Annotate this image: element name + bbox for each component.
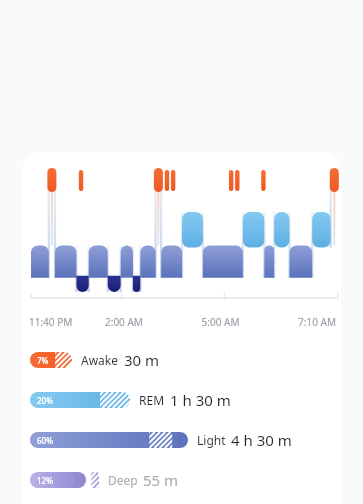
other: Sleep stage hypnogram <box>31 164 338 312</box>
staticText: REM <box>139 392 165 408</box>
staticText: 12% <box>37 475 53 486</box>
staticText: 2:00 AM <box>105 315 182 329</box>
staticText: Light <box>197 432 226 448</box>
button[interactable]: 7% <box>22 348 341 372</box>
staticText: 7:10 AM <box>259 315 336 329</box>
staticText: Awake <box>81 352 119 368</box>
staticText: 60% <box>37 435 53 446</box>
staticText: 11:40 PM <box>29 315 105 329</box>
staticText: 4 h 30 m <box>231 430 292 450</box>
button[interactable]: 12% <box>22 468 341 492</box>
staticText: Deep <box>108 472 138 488</box>
staticText: 55 m <box>143 470 179 490</box>
button[interactable]: 20% <box>22 388 341 412</box>
staticText: 1 h 30 m <box>170 390 231 410</box>
button[interactable]: 60% <box>22 428 341 452</box>
staticText: 20% <box>37 395 53 406</box>
staticText: 7% <box>37 355 49 366</box>
staticText: 30 m <box>124 350 160 370</box>
staticText: 5:00 AM <box>182 315 259 329</box>
